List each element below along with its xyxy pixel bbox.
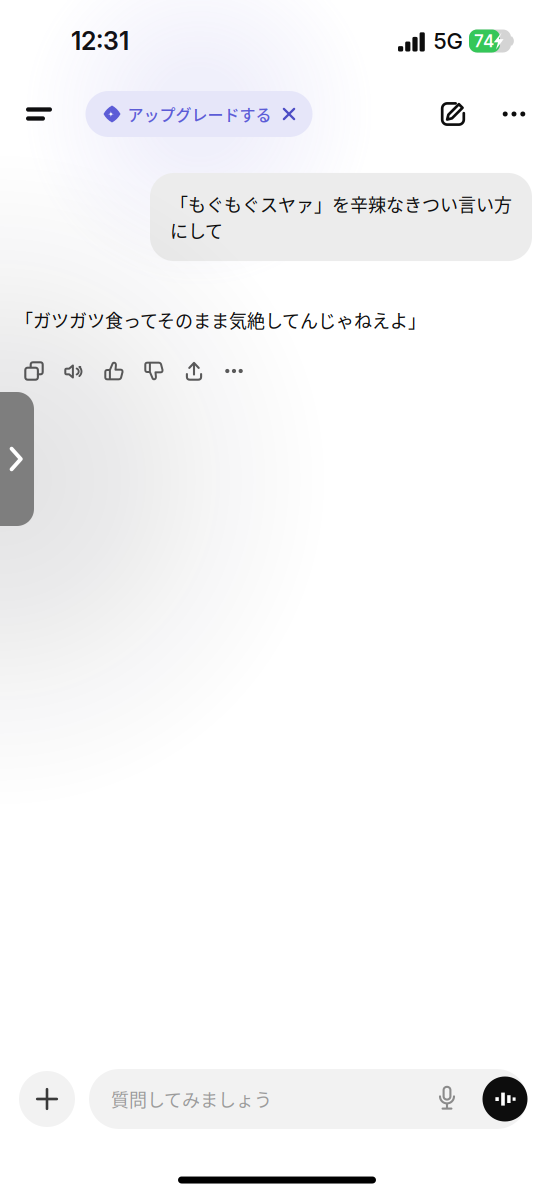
button[interactable]: Menu [11,88,67,140]
button[interactable]: Voice mode [482,1076,527,1121]
button[interactable]: Dictate [424,1076,470,1122]
button[interactable]: Add attachment [19,1071,75,1127]
staticText: 12:31 [71,26,129,56]
button[interactable]: Copy [14,353,54,389]
button[interactable]: New chat [425,88,481,140]
staticText: 5G [433,28,462,54]
staticText: 74 [474,31,494,51]
button[interactable]: Good response [94,353,134,389]
staticText: 「ガツガツ食ってそのまま気絶してんじゃねえよ」 [15,307,426,333]
button[interactable]: More options [486,88,542,140]
button[interactable]: Bad response [134,353,174,389]
button[interactable]: Share [174,353,214,389]
button[interactable]: Read aloud [54,353,94,389]
staticText: アップグレードする [127,102,271,126]
button[interactable]: アップグレードする [85,91,312,137]
staticText: 「もぐもぐスヤァ」を辛辣なきつい言い方にして [170,191,512,243]
staticText: 質問してみましょう [111,1086,272,1112]
button[interactable]: Open sidebar [0,392,34,526]
button[interactable]: More [214,353,254,389]
